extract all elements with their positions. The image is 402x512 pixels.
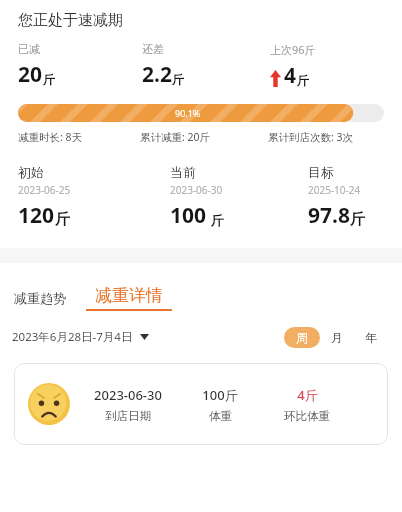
staticText: 90.1%: [175, 107, 201, 119]
staticText: 初始: [18, 164, 44, 180]
staticText: 上次96斤: [270, 42, 316, 57]
staticText: 2023-06-25: [18, 183, 71, 197]
staticText: 累计到店次数: 3次: [268, 130, 354, 144]
staticText: 累计减重: 20斤: [140, 130, 211, 144]
staticText: 月: [331, 330, 343, 345]
staticText: 100: [170, 201, 207, 230]
staticText: 还差: [142, 42, 164, 56]
button[interactable]: 月: [320, 327, 354, 348]
button[interactable]: 减重详情: [84, 285, 174, 311]
staticText: 斤: [55, 210, 70, 229]
staticText: 2025-10-24: [308, 183, 361, 197]
staticText: 20: [18, 60, 43, 89]
staticText: 已减: [18, 42, 40, 56]
staticText: 4: [284, 61, 297, 90]
staticText: 100斤: [202, 386, 238, 404]
staticText: 2023-06-30: [94, 386, 162, 404]
staticText: 斤: [207, 211, 224, 229]
staticText: 减重详情: [95, 285, 163, 306]
staticText: 斤: [43, 72, 55, 87]
staticText: 周: [296, 330, 308, 345]
button[interactable]: 年: [354, 327, 388, 348]
other: 上升: [270, 70, 281, 87]
staticText: 2023年6月28日-7月4日: [12, 329, 133, 345]
staticText: 2.2: [142, 60, 172, 89]
staticText: 斤: [350, 210, 365, 229]
staticText: 您正处于速减期: [18, 11, 123, 30]
button[interactable]: 2023年6月28日-7月4日: [10, 325, 151, 349]
staticText: 目标: [308, 164, 334, 180]
staticText: 到店日期: [105, 409, 151, 423]
staticText: 当前: [170, 164, 196, 180]
button[interactable]: 难过表情: [14, 363, 388, 445]
staticText: 120: [18, 201, 55, 230]
staticText: 体重: [209, 409, 232, 423]
staticText: 斤: [297, 73, 309, 88]
other: 难过表情: [28, 383, 70, 425]
button[interactable]: 减重趋势: [12, 286, 68, 310]
staticText: 减重趋势: [14, 290, 66, 306]
staticText: 斤: [172, 72, 184, 87]
staticText: 2023-06-30: [170, 183, 223, 197]
staticText: 年: [365, 330, 377, 345]
button[interactable]: 周: [284, 327, 320, 348]
staticText: 减重时长: 8天: [18, 130, 83, 144]
staticText: 97.8: [308, 201, 350, 230]
staticText: 4斤: [297, 386, 318, 404]
staticText: 环比体重: [284, 409, 330, 423]
